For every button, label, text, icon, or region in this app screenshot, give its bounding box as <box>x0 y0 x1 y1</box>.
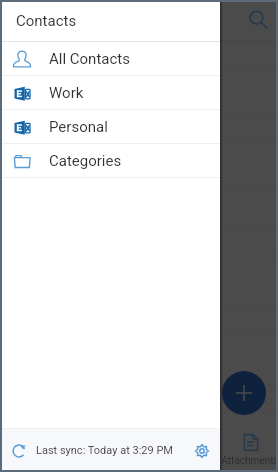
button[interactable]: Categories <box>0 144 220 177</box>
staticText: Categories <box>49 152 122 170</box>
staticText: Work <box>49 84 84 102</box>
button[interactable]: Attachments <box>220 429 278 472</box>
staticText: Last sync: Today at 3:29 PM <box>36 444 173 457</box>
button[interactable]: All Contacts <box>0 42 220 75</box>
button[interactable]: Personal <box>0 110 220 143</box>
staticText: Contacts <box>16 12 77 30</box>
staticText: Attachments <box>221 455 278 467</box>
staticText: All Contacts <box>49 50 130 68</box>
button[interactable]: Settings <box>190 439 214 463</box>
button[interactable]: New contact <box>222 371 266 415</box>
staticText: Personal <box>49 118 108 136</box>
button[interactable]: Search <box>241 2 274 35</box>
button[interactable]: Sync now <box>6 438 32 464</box>
button[interactable]: Work <box>0 76 220 109</box>
